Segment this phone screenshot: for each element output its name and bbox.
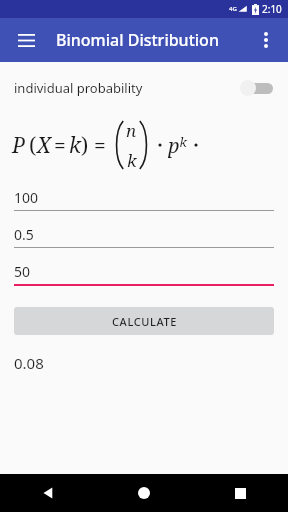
staticText: CALCULATE (112, 314, 177, 329)
button[interactable]: Back (0, 474, 96, 512)
staticText: 50 (14, 262, 31, 281)
button[interactable]: individual probability toggle (240, 79, 274, 97)
staticText: Binomial Distribution (56, 29, 219, 51)
button[interactable]: More options (248, 22, 284, 58)
staticText: = (94, 131, 106, 160)
staticText: 0.08 (14, 353, 44, 373)
staticText: 0.5 (14, 225, 34, 244)
staticText: n (126, 119, 137, 142)
staticText: = (54, 131, 66, 160)
staticText: P (12, 131, 26, 160)
staticText: k (127, 149, 137, 171)
staticText: individual probability (14, 79, 143, 97)
staticText: ) (81, 131, 89, 160)
staticText: ( (29, 131, 37, 160)
button[interactable]: Home (96, 474, 192, 512)
button[interactable]: 0.5 (14, 225, 274, 248)
staticText: X (37, 131, 51, 160)
button[interactable]: 100 (14, 188, 274, 211)
button[interactable]: Open navigation drawer (8, 22, 44, 58)
staticText: 4G (229, 5, 237, 13)
staticText: pk (168, 132, 187, 159)
button[interactable]: individual probability (0, 74, 288, 102)
button[interactable]: CALCULATE (14, 307, 274, 335)
button[interactable]: Recent apps (192, 474, 288, 512)
staticText: 2:10 (262, 2, 282, 16)
button[interactable]: 50 (14, 262, 274, 286)
staticText: k (69, 131, 81, 160)
staticText: 100 (14, 188, 39, 207)
